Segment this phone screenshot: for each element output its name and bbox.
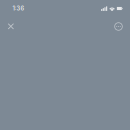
button[interactable]: Close bbox=[0, 18, 22, 35]
staticText: 1:36 bbox=[13, 5, 25, 12]
button[interactable]: More options bbox=[107, 18, 129, 35]
